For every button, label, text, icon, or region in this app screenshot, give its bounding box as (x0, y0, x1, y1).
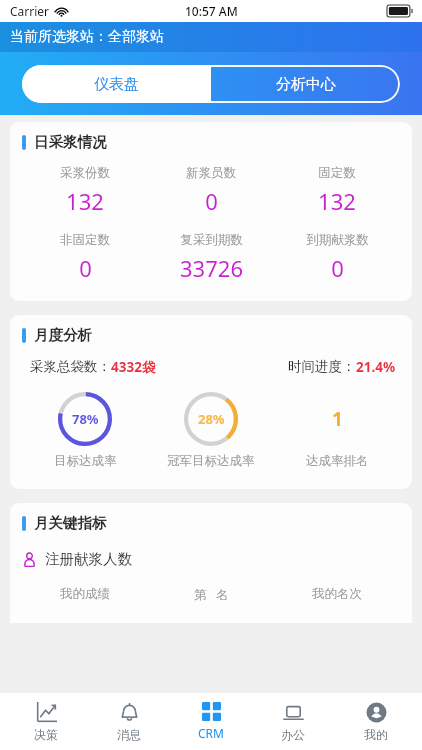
staticText: 132 (318, 186, 356, 216)
button[interactable]: 分析中心 (211, 65, 400, 103)
staticText: 到期献浆数 (306, 232, 369, 248)
staticText: 仪表盘 (94, 75, 139, 94)
staticText: 1 (332, 406, 343, 432)
staticText: 月关键指标 (34, 514, 107, 532)
staticText: 0 (205, 186, 218, 216)
staticText: 28% (198, 410, 225, 428)
button[interactable]: 仪表盘 (22, 65, 211, 103)
staticText: 注册献浆人数 (45, 550, 132, 568)
staticText: 第 名 (194, 586, 229, 603)
staticText: 决策 (34, 727, 58, 742)
staticText: 0 (79, 253, 92, 283)
staticText: 复采到期数 (180, 232, 243, 248)
staticText: 当前所选浆站：全部浆站 (10, 28, 164, 46)
staticText: 132 (66, 186, 104, 216)
staticText: Carrier (10, 3, 50, 19)
staticText: 目标达成率 (54, 453, 117, 469)
staticText: 消息 (117, 727, 141, 742)
staticText: 采浆总袋数： (30, 358, 111, 375)
staticText: 21.4% (356, 358, 396, 376)
staticText: 10:57 AM (185, 3, 238, 19)
staticText: 冠军目标达成率 (167, 453, 255, 469)
staticText: 采浆份数 (60, 165, 110, 181)
button[interactable]: 办公 (257, 693, 329, 750)
staticText: 日采浆情况 (34, 133, 107, 151)
staticText: 月度分析 (34, 326, 92, 344)
button[interactable]: 消息 (93, 693, 165, 750)
staticText: 33726 (180, 253, 243, 283)
button[interactable]: 决策 (10, 693, 82, 750)
staticText: 78% (72, 410, 99, 428)
staticText: 新浆员数 (186, 165, 236, 181)
button[interactable]: CRM (175, 693, 247, 750)
staticText: 固定数 (318, 165, 356, 181)
staticText: 0 (331, 253, 344, 283)
staticText: 我的名次 (312, 586, 362, 602)
staticText: 时间进度： (288, 358, 356, 375)
button[interactable]: 我的 (340, 693, 412, 750)
staticText: 4332袋 (111, 358, 156, 376)
staticText: 非固定数 (60, 232, 110, 248)
staticText: CRM (198, 725, 224, 741)
staticText: 办公 (281, 727, 305, 742)
staticText: 分析中心 (276, 75, 336, 94)
staticText: 我的成绩 (60, 586, 110, 602)
staticText: 达成率排名 (306, 453, 369, 469)
staticText: 我的 (364, 727, 388, 742)
